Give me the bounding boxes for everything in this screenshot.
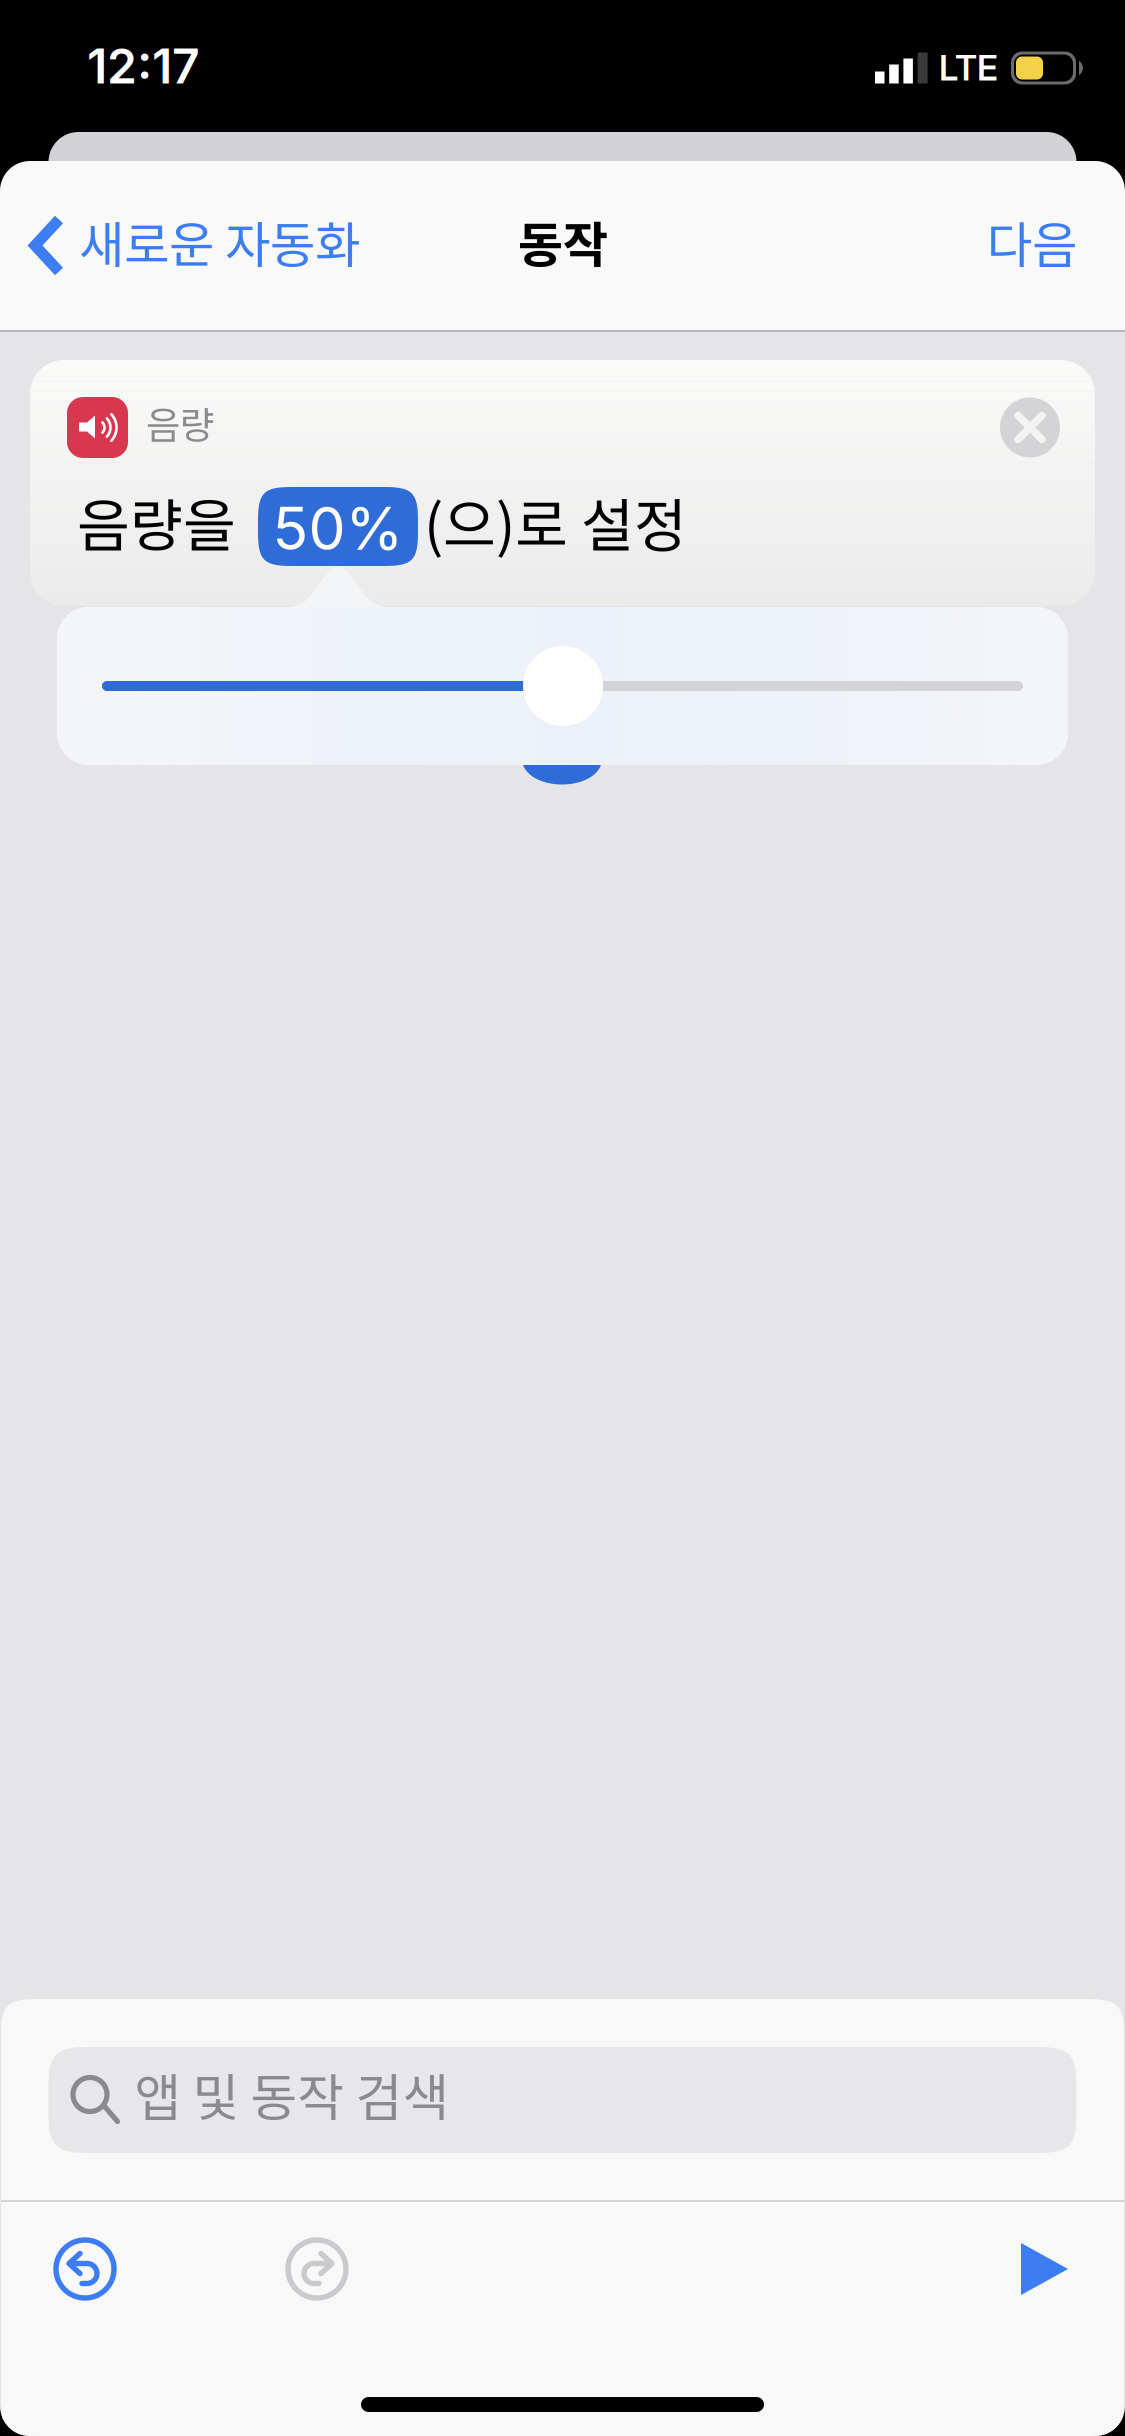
staticText: 12:17 (87, 37, 200, 95)
button[interactable]: 동작 제거 (1000, 397, 1060, 457)
button[interactable]: 앱 및 동작 검색 (48, 2047, 1076, 2153)
button[interactable]: 50% (258, 487, 418, 566)
button[interactable]: 새로운 자동화 (0, 161, 382, 330)
staticText: (으)로 설정 (424, 480, 687, 563)
button[interactable]: 재생 (1019, 2241, 1070, 2297)
staticText: 음량을 (77, 480, 236, 563)
button[interactable]: 실행 취소 (53, 2237, 117, 2301)
staticText: 다음 (987, 206, 1077, 277)
staticText: 동작 (517, 206, 607, 277)
button[interactable]: 다시 실행 (285, 2237, 349, 2301)
staticText: 50% (272, 493, 403, 564)
staticText: 앱 및 동작 검색 (134, 2057, 449, 2131)
button[interactable]: 다음 (963, 161, 1125, 330)
staticText: 새로운 자동화 (79, 206, 360, 277)
staticText: LTE (939, 47, 998, 89)
staticText: 음량 (146, 395, 214, 450)
